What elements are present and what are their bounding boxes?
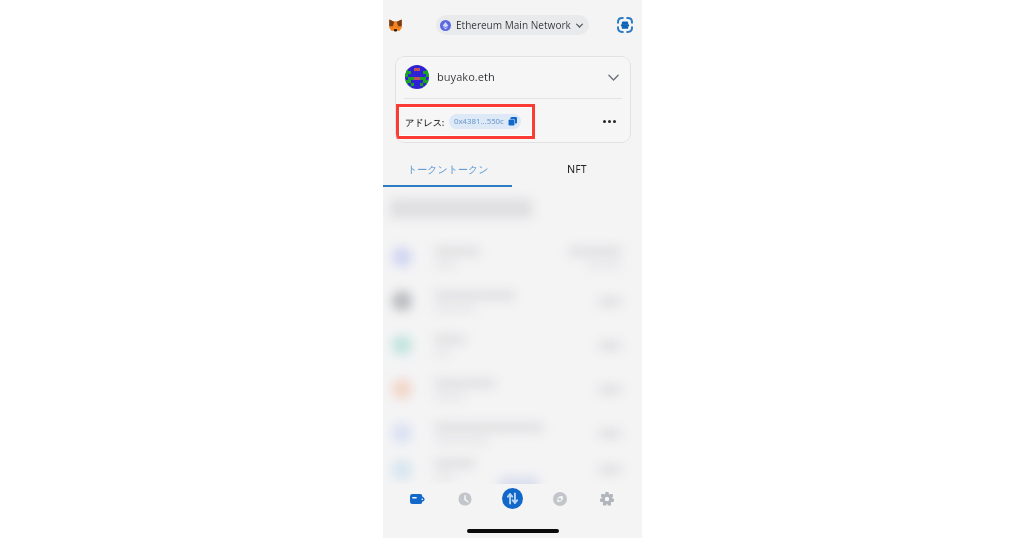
- button[interactable]: トークントークン: [383, 143, 512, 185]
- button[interactable]: 0x4381...550c: [449, 114, 521, 129]
- staticText: Ethereum Main Network: [456, 18, 571, 32]
- button[interactable]: NFT: [512, 143, 642, 185]
- button[interactable]: Ethereum Main Network: [436, 15, 589, 35]
- staticText: NFT: [567, 162, 587, 176]
- button[interactable]: Scan QR code: [612, 12, 638, 38]
- button[interactable]: History: [441, 484, 489, 513]
- staticText: buyako.eth: [437, 69, 495, 84]
- staticText: トークントークン: [407, 163, 489, 176]
- button[interactable]: buyako.eth: [395, 56, 631, 98]
- staticText: アドレス:: [405, 116, 445, 128]
- button[interactable]: Settings: [583, 484, 630, 513]
- button[interactable]: Wallet: [393, 484, 441, 513]
- staticText: 0x4381...550c: [454, 116, 504, 127]
- button[interactable]: MetaMask: [382, 12, 408, 38]
- button[interactable]: Swap: [489, 484, 536, 513]
- button[interactable]: Browser: [536, 484, 583, 513]
- button[interactable]: More options: [587, 99, 631, 143]
